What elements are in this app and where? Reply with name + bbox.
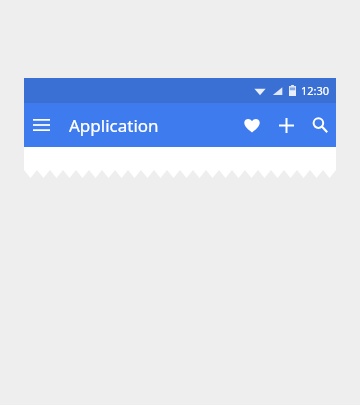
button[interactable]: Add bbox=[274, 113, 298, 137]
button[interactable]: Favorite bbox=[240, 113, 264, 137]
button[interactable]: Search bbox=[308, 113, 332, 137]
button[interactable]: Open navigation menu bbox=[29, 113, 53, 137]
staticText: Application bbox=[69, 114, 159, 137]
staticText: 12:30 bbox=[301, 83, 330, 98]
